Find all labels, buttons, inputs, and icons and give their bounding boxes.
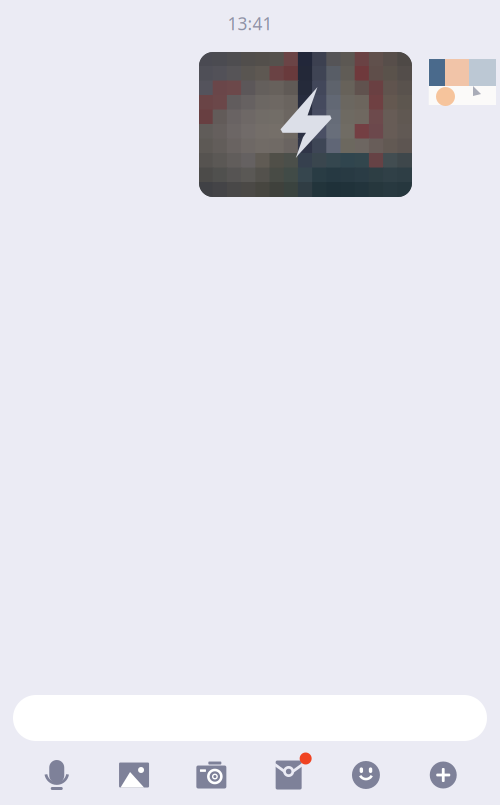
- button[interactable]: Photos: [95, 753, 173, 797]
- staticText: 13:41: [227, 12, 272, 35]
- button[interactable]: Red packet: [250, 753, 327, 797]
- button[interactable]: Voice message: [18, 753, 95, 797]
- button[interactable]: Camera: [173, 753, 250, 797]
- button[interactable]: More: [405, 753, 482, 797]
- button[interactable]: Stickers: [327, 753, 405, 797]
